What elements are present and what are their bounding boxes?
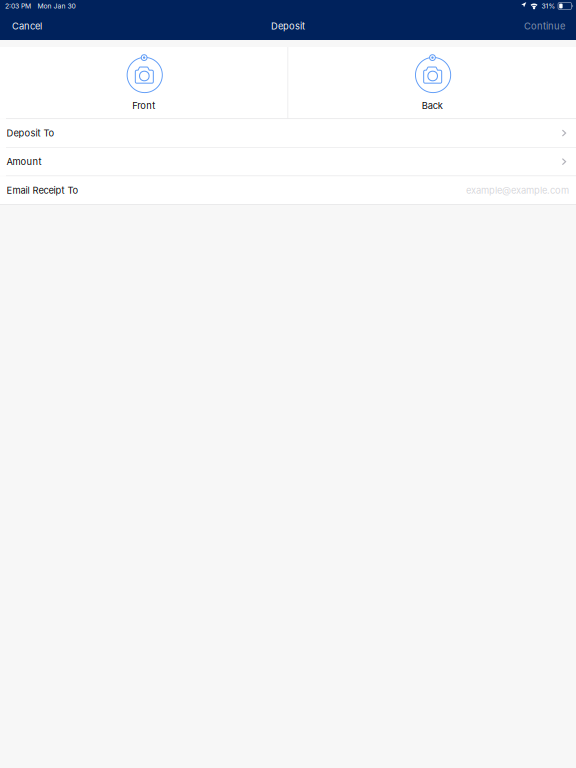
staticText: Back xyxy=(422,100,443,111)
staticText: Mon Jan 30 xyxy=(37,2,75,10)
button[interactable]: Back xyxy=(288,47,576,118)
staticText: Deposit To xyxy=(6,127,54,139)
button[interactable]: Email Receipt To xyxy=(0,176,576,204)
button[interactable]: Deposit To xyxy=(0,119,576,147)
staticText: Email Receipt To xyxy=(6,185,78,196)
staticText: Cancel xyxy=(12,20,42,32)
button[interactable]: Amount xyxy=(0,148,576,176)
staticText: 2:03 PM xyxy=(5,2,31,10)
staticText: 31% xyxy=(541,2,555,10)
staticText: Front xyxy=(132,100,155,111)
button[interactable]: Cancel xyxy=(0,12,54,40)
staticText: Deposit xyxy=(271,20,305,32)
button[interactable]: Front xyxy=(0,47,288,118)
staticText: Continue xyxy=(524,20,565,32)
button[interactable]: Continue xyxy=(513,12,576,40)
staticText: example@example.com xyxy=(466,185,569,196)
staticText: Amount xyxy=(6,156,41,167)
